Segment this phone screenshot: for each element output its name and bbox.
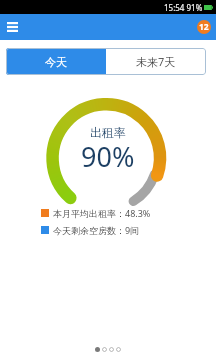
staticText: 今天剩余空房数：9间 bbox=[53, 224, 140, 236]
button[interactable]: 12 bbox=[197, 20, 211, 34]
button[interactable]: 未来7天 bbox=[106, 48, 206, 75]
button[interactable]: Menu bbox=[2, 17, 22, 37]
staticText: 今天 bbox=[45, 55, 67, 69]
staticText: 15:54 91% bbox=[164, 2, 203, 13]
button[interactable]: 今天 bbox=[6, 48, 106, 75]
staticText: 未来7天 bbox=[136, 54, 176, 69]
staticText: 出租率 bbox=[90, 125, 126, 140]
staticText: 90% bbox=[81, 138, 135, 175]
staticText: 12 bbox=[199, 21, 209, 33]
staticText: 本月平均出租率：48.3% bbox=[53, 207, 151, 219]
